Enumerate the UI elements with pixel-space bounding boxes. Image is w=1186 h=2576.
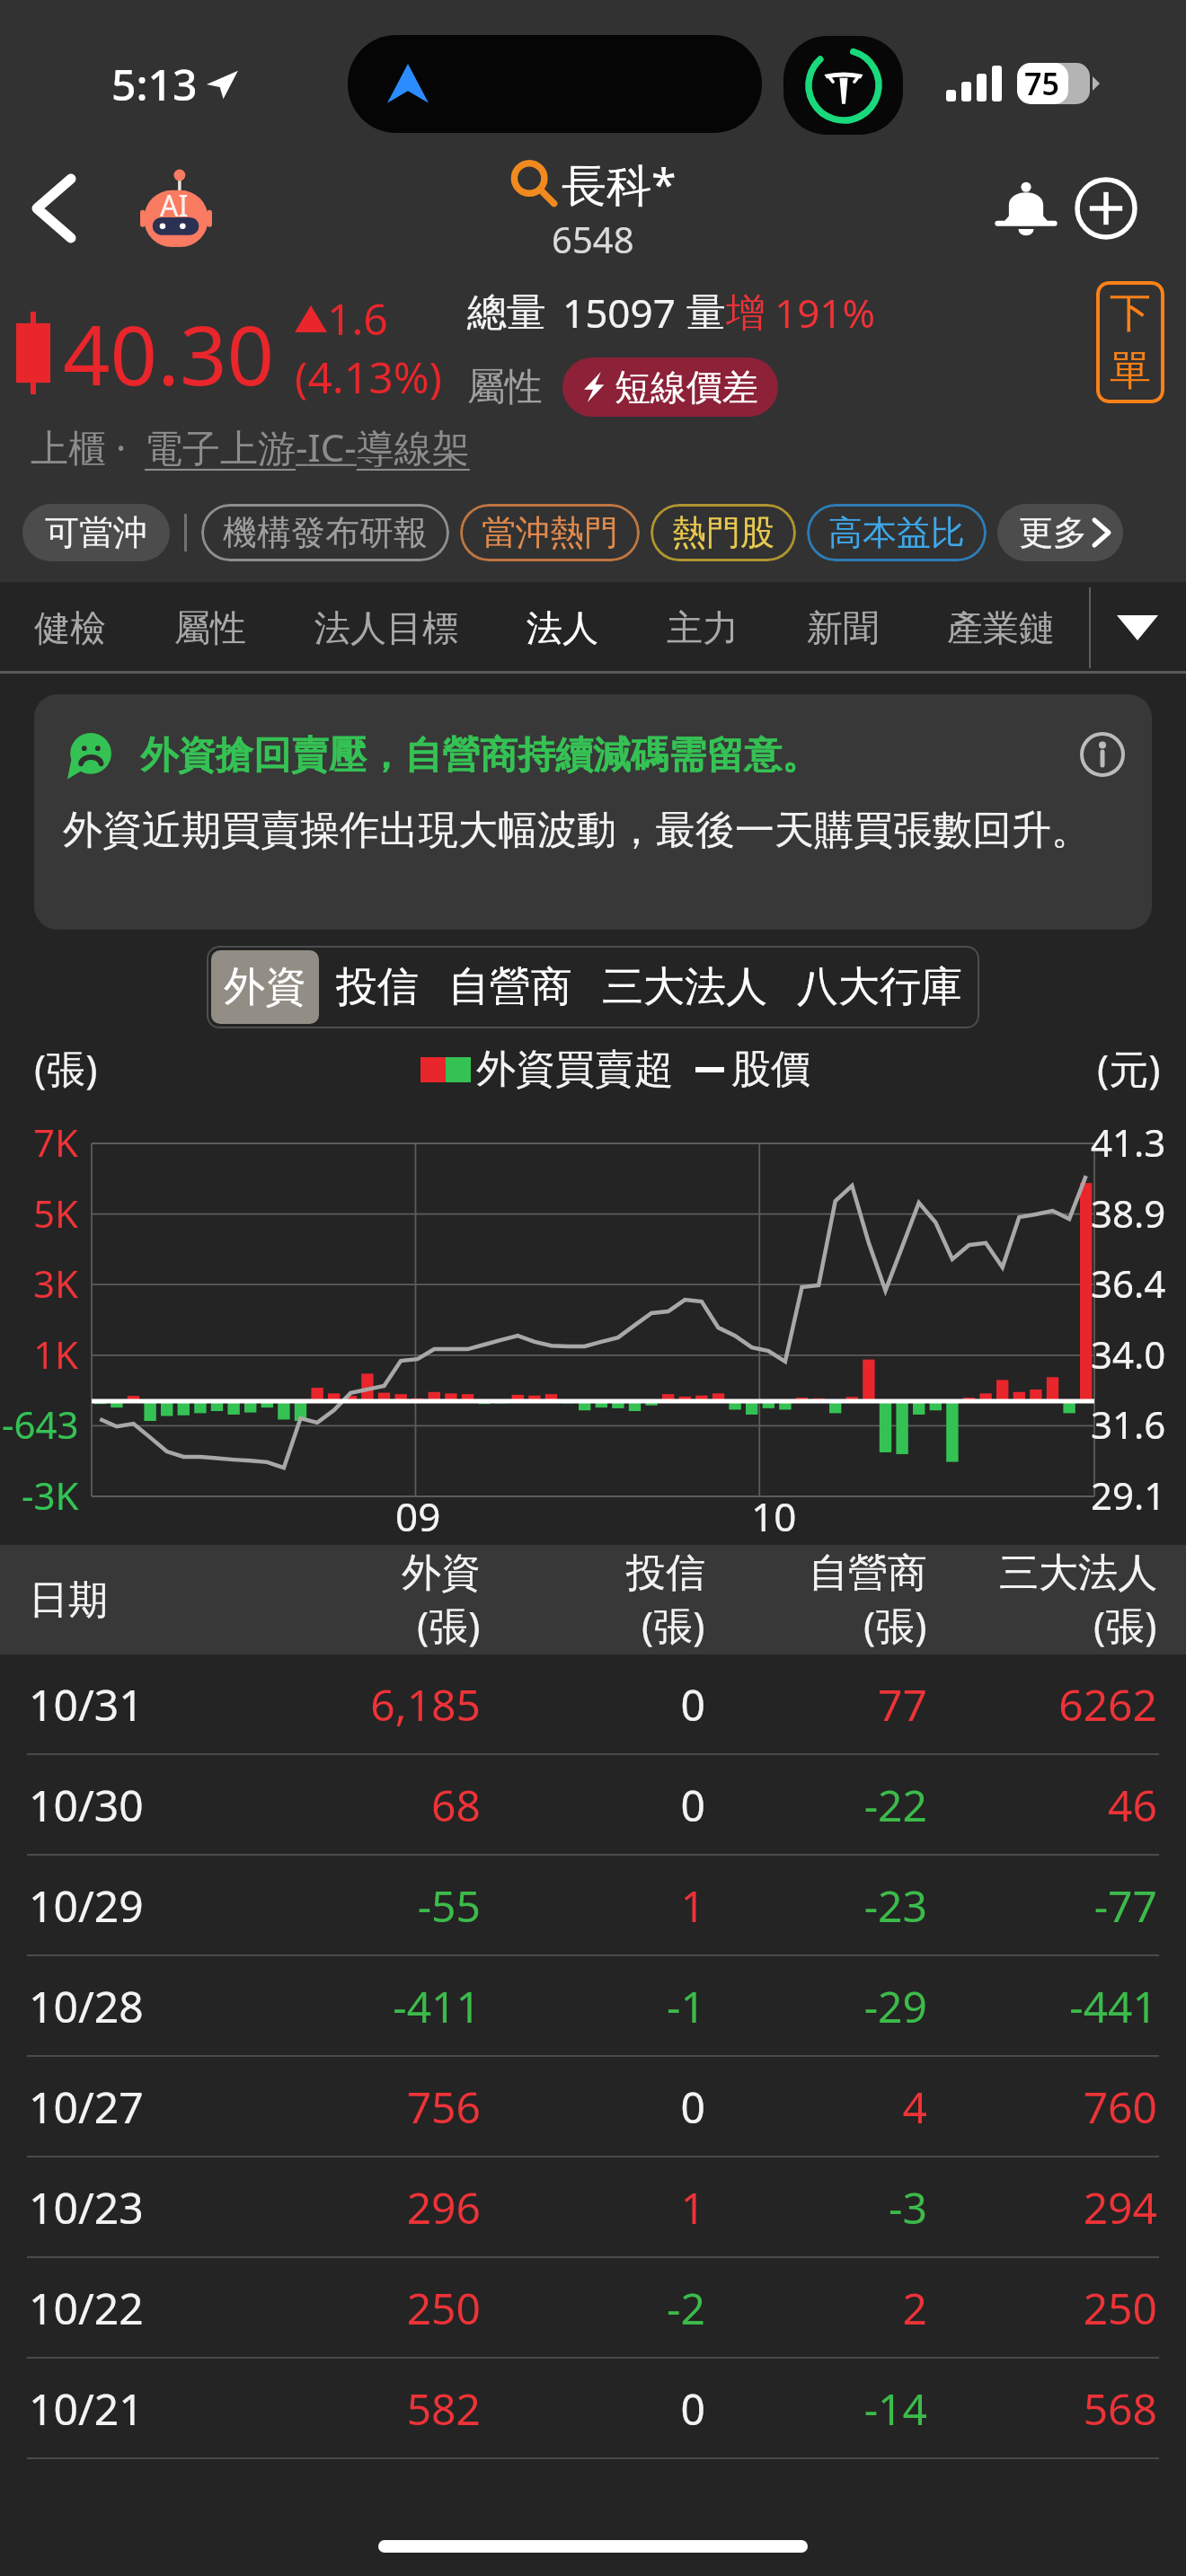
- staticText: 投信: [626, 1548, 705, 1598]
- button[interactable]: AI assistant: [137, 170, 215, 247]
- staticText: 294: [927, 2178, 1157, 2236]
- button[interactable]: 10/30: [0, 1755, 1186, 1854]
- staticText: 三大法人: [999, 1548, 1157, 1598]
- staticText: 10/31: [29, 1675, 285, 1734]
- staticText: 09: [395, 1489, 441, 1543]
- staticText: 296: [285, 2178, 481, 2236]
- button[interactable]: 10/29: [0, 1856, 1186, 1954]
- staticText: 10/28: [29, 1977, 285, 2035]
- staticText: 0: [481, 1675, 705, 1734]
- staticText: 八大行庫: [797, 961, 962, 1013]
- staticText: 0: [481, 2379, 705, 2438]
- button[interactable]: 法人目標: [311, 582, 462, 674]
- staticText: 31.6: [1091, 1398, 1166, 1450]
- staticText: 增: [726, 288, 766, 338]
- staticText: (4.13%): [295, 348, 442, 406]
- staticText: 4: [705, 2078, 927, 2136]
- staticText: 10: [751, 1489, 797, 1543]
- button[interactable]: 更多: [997, 504, 1123, 561]
- button[interactable]: 投信: [323, 950, 431, 1024]
- button[interactable]: Back: [5, 160, 102, 257]
- staticText: (張): [34, 1041, 98, 1095]
- button[interactable]: 外資: [211, 950, 319, 1024]
- staticText: 自營商: [448, 961, 572, 1013]
- button[interactable]: 新聞: [803, 582, 882, 674]
- staticText: 電子上游-IC-導線架: [145, 421, 470, 472]
- button[interactable]: More tabs: [1089, 582, 1186, 674]
- staticText: 250: [927, 2279, 1157, 2337]
- staticText: 長科*: [562, 154, 677, 215]
- staticText: 產業鏈: [947, 605, 1055, 650]
- button[interactable]: 自營商: [436, 950, 585, 1024]
- staticText: 下: [1110, 287, 1151, 340]
- button[interactable]: 熱門股: [651, 504, 796, 561]
- button[interactable]: 10/22: [0, 2258, 1186, 2357]
- staticText: 當沖熱門: [482, 511, 618, 554]
- button[interactable]: 10/21: [0, 2359, 1186, 2457]
- staticText: 760: [927, 2078, 1157, 2136]
- staticText: 投信: [336, 961, 419, 1013]
- button[interactable]: 高本益比: [807, 504, 987, 561]
- staticText: 77: [705, 1675, 927, 1734]
- button[interactable]: 三大法人: [589, 950, 780, 1024]
- staticText: 日期: [29, 1575, 285, 1625]
- staticText: 10/30: [29, 1776, 285, 1834]
- staticText: 1: [481, 2178, 705, 2236]
- button[interactable]: Add to watchlist: [1061, 163, 1151, 253]
- staticText: 高本益比: [828, 511, 965, 554]
- button[interactable]: 主力: [663, 582, 742, 674]
- staticText: 1K: [33, 1328, 79, 1380]
- button[interactable]: 屬性: [171, 582, 250, 674]
- staticText: (張): [417, 1598, 481, 1652]
- staticText: -22: [705, 1776, 927, 1834]
- staticText: 1: [481, 1876, 705, 1935]
- staticText: 屬性: [174, 605, 246, 650]
- button[interactable]: 產業鏈: [943, 582, 1058, 674]
- button[interactable]: 10/28: [0, 1956, 1186, 2055]
- button[interactable]: Info: [1080, 732, 1125, 777]
- staticText: 短線價差: [615, 365, 758, 410]
- staticText: 10/27: [29, 2078, 285, 2136]
- staticText: 582: [285, 2379, 481, 2438]
- staticText: 屬性: [467, 364, 543, 411]
- staticText: 568: [927, 2379, 1157, 2438]
- button[interactable]: Notifications: [986, 168, 1067, 249]
- staticText: -29: [705, 1977, 927, 2035]
- button[interactable]: 10/27: [0, 2057, 1186, 2156]
- button[interactable]: 健檢: [31, 582, 110, 674]
- staticText: 更多: [1019, 511, 1087, 554]
- staticText: (張): [863, 1598, 927, 1652]
- button[interactable]: 可當沖: [22, 504, 170, 561]
- staticText: 40.30: [63, 297, 275, 410]
- button[interactable]: 外資搶回賣壓，自營商持續減碼需留意。: [34, 694, 1152, 930]
- button[interactable]: 當沖熱門: [460, 504, 640, 561]
- staticText: 15097: [562, 286, 676, 340]
- staticText: 健檢: [34, 605, 106, 650]
- staticText: 法人: [527, 605, 598, 650]
- staticText: 外資近期買賣操作出現大幅波動，最後一天購買張數回升。: [63, 806, 1091, 855]
- button[interactable]: 法人: [523, 582, 602, 674]
- staticText: 41.3: [1091, 1116, 1166, 1168]
- staticText: 上櫃 ·: [31, 421, 127, 472]
- button[interactable]: 八大行庫: [784, 950, 975, 1024]
- staticText: 6,185: [285, 1675, 481, 1734]
- staticText: 股價: [731, 1045, 810, 1094]
- staticText: -3: [705, 2178, 927, 2236]
- staticText: 熱門股: [672, 511, 774, 554]
- button[interactable]: 10/23: [0, 2157, 1186, 2256]
- staticText: -23: [705, 1876, 927, 1935]
- staticText: 新聞: [807, 605, 879, 650]
- button[interactable]: 短線價差: [562, 357, 778, 417]
- staticText: 756: [285, 2078, 481, 2136]
- staticText: AI: [160, 186, 189, 225]
- staticText: (元): [1097, 1041, 1161, 1095]
- button[interactable]: 下: [1096, 281, 1164, 403]
- staticText: 250: [285, 2279, 481, 2337]
- staticText: 外資: [402, 1548, 481, 1598]
- staticText: -55: [285, 1876, 481, 1935]
- staticText: 75: [1024, 63, 1059, 104]
- button[interactable]: 10/31: [0, 1654, 1186, 1753]
- staticText: 機構發布研報: [223, 511, 428, 554]
- button[interactable]: 機構發布研報: [201, 504, 449, 561]
- staticText: 1.6: [327, 289, 388, 348]
